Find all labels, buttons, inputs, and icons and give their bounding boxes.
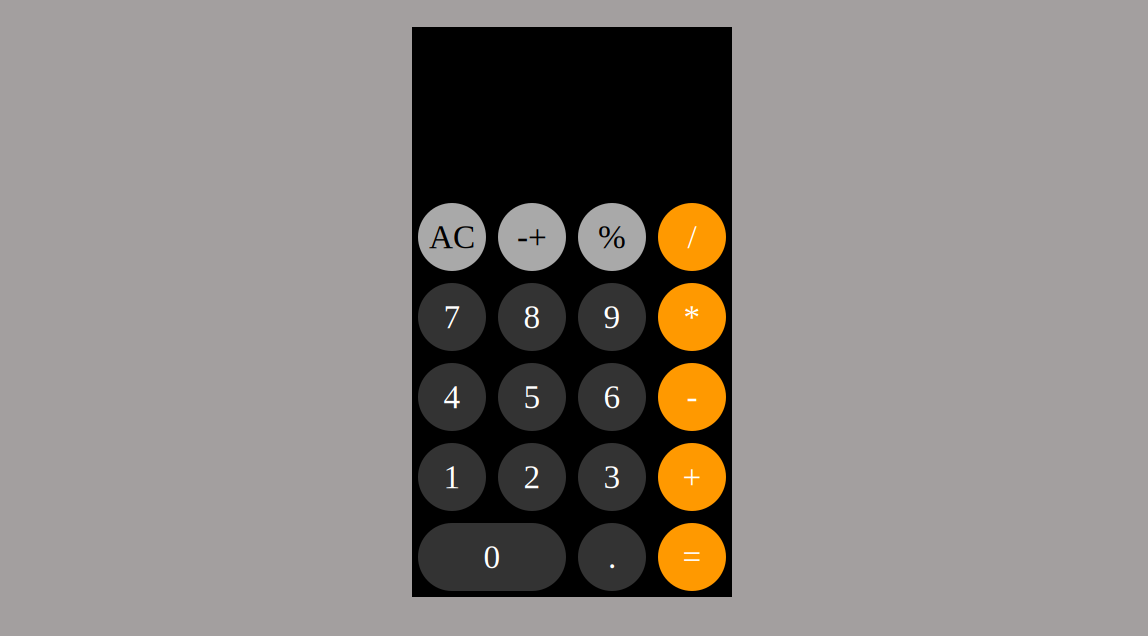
button[interactable]: 9 [578,283,646,351]
button[interactable]: All clear [418,203,486,271]
staticText: 9 [603,298,620,335]
staticText: -+ [517,218,547,255]
button[interactable]: Decimal point [578,523,646,591]
staticText: 8 [523,298,540,335]
button[interactable]: 7 [418,283,486,351]
button[interactable]: Equals [658,523,726,591]
staticText: 7 [443,298,460,335]
button[interactable]: Multiply [658,283,726,351]
button[interactable]: 8 [498,283,566,351]
staticText: 2 [523,458,540,495]
button[interactable]: 4 [418,363,486,431]
staticText: 3 [603,458,620,495]
button[interactable]: Subtract [658,363,726,431]
button[interactable]: 3 [578,443,646,511]
staticText: * [683,298,700,335]
button[interactable]: 6 [578,363,646,431]
button[interactable]: Divide [658,203,726,271]
staticText: - [686,378,697,415]
button[interactable]: 2 [498,443,566,511]
staticText: 1 [443,458,460,495]
button[interactable]: Percent [578,203,646,271]
staticText: % [598,218,626,255]
staticText: = [682,538,701,575]
button[interactable]: 1 [418,443,486,511]
staticText: 4 [443,378,460,415]
staticText: 6 [603,378,620,415]
button[interactable]: 0 [418,523,566,591]
staticText: 0 [483,538,500,575]
staticText: 5 [523,378,540,415]
button[interactable]: Add [658,443,726,511]
staticText: . [608,538,616,575]
staticText: / [687,218,696,255]
staticText: + [682,458,701,495]
staticText: AC [429,218,475,255]
button[interactable]: Toggle sign [498,203,566,271]
button[interactable]: 5 [498,363,566,431]
